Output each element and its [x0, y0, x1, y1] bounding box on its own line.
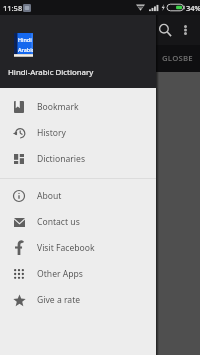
staticText: 34% [186, 3, 200, 13]
staticText: GLOSBE [162, 53, 193, 64]
staticText: About [37, 190, 62, 202]
staticText: Contact us [37, 216, 80, 228]
button[interactable]: Bookmark [0, 94, 156, 120]
staticText: Visit Facebook [37, 242, 95, 254]
staticText: Bookmark [37, 101, 79, 113]
button[interactable]: Other Apps [0, 261, 156, 287]
button[interactable]: About [0, 183, 156, 209]
button[interactable]: Search [152, 15, 178, 45]
button[interactable]: Visit Facebook [0, 235, 156, 261]
staticText: Hindi [18, 36, 32, 43]
button[interactable]: Dictionaries [0, 146, 156, 172]
staticText: History [37, 127, 66, 139]
button[interactable]: More options [176, 15, 194, 45]
staticText: Arabic [18, 46, 33, 53]
button[interactable]: Give a rate [0, 287, 156, 313]
staticText: 11:58 [3, 3, 23, 13]
staticText: Other Apps [37, 268, 83, 280]
staticText: Give a rate [37, 294, 81, 306]
button[interactable]: Contact us [0, 209, 156, 235]
button[interactable]: History [0, 120, 156, 146]
staticText: Dictionaries [37, 153, 85, 165]
staticText: Hindi-Arabic Dictionary [8, 67, 94, 78]
